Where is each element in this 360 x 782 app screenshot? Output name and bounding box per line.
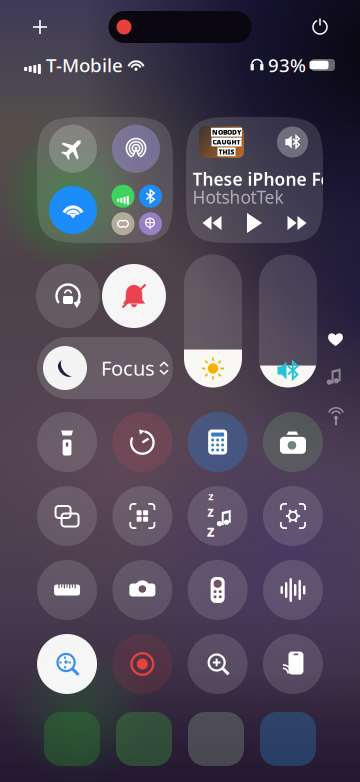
button[interactable]: Code Scanner bbox=[112, 486, 172, 546]
button[interactable]: Remote Device bbox=[263, 634, 323, 694]
button[interactable]: Timer bbox=[112, 412, 172, 472]
staticText: z bbox=[207, 503, 214, 520]
button[interactable]: Apple TV Remote bbox=[188, 560, 248, 620]
staticText: THIS bbox=[218, 147, 234, 156]
button[interactable]: Personal Hotspot bbox=[111, 212, 134, 235]
staticText: 93% bbox=[268, 53, 306, 77]
button[interactable]: Sleep Sounds bbox=[188, 486, 248, 546]
button[interactable]: Screen Record bbox=[112, 634, 172, 694]
staticText: These iPhone Feat bbox=[192, 167, 347, 190]
button[interactable]: Magnifier bbox=[37, 634, 97, 694]
staticText: z bbox=[207, 520, 215, 541]
button[interactable]: AirDrop bbox=[112, 125, 160, 173]
button[interactable]: Cellular Data bbox=[111, 185, 134, 208]
button[interactable]: Rotation Lock bbox=[36, 264, 100, 328]
button[interactable]: Text Size bbox=[263, 486, 323, 546]
button[interactable]: Next track bbox=[283, 213, 311, 233]
button[interactable]: Flashlight bbox=[37, 412, 97, 472]
staticText: z bbox=[208, 489, 213, 503]
button[interactable]: Add control bbox=[18, 5, 62, 49]
button[interactable]: Focus bbox=[37, 337, 173, 399]
staticText: HotshotTek bbox=[192, 185, 283, 208]
button[interactable]: Zoom bbox=[188, 634, 248, 694]
button[interactable]: Screen Mirroring bbox=[37, 486, 97, 546]
button[interactable]: Previous track bbox=[198, 213, 226, 233]
button[interactable]: Volume bbox=[259, 254, 317, 387]
button[interactable]: Power off bbox=[298, 5, 342, 49]
button[interactable]: Level bbox=[112, 560, 172, 620]
button[interactable]: Wi-Fi bbox=[49, 186, 97, 234]
button[interactable]: Calculator bbox=[188, 412, 248, 472]
staticText: CAUGHT bbox=[212, 138, 240, 146]
staticText: NOBODY bbox=[212, 128, 241, 137]
button[interactable]: Airplane Mode bbox=[49, 125, 97, 173]
staticText: Focus bbox=[101, 355, 155, 381]
button[interactable]: Bluetooth bbox=[139, 185, 162, 208]
staticText: T-Mobile bbox=[46, 53, 123, 77]
button[interactable]: Brightness bbox=[184, 254, 242, 387]
button[interactable]: Silent Mode bbox=[102, 264, 166, 328]
button[interactable]: VPN bbox=[139, 212, 162, 235]
button[interactable]: Camera bbox=[263, 412, 323, 472]
button[interactable]: AirPlay output bbox=[277, 126, 308, 157]
button[interactable]: Sound Recognition bbox=[263, 560, 323, 620]
button[interactable]: Play bbox=[243, 211, 265, 235]
button[interactable]: Measure bbox=[37, 560, 97, 620]
